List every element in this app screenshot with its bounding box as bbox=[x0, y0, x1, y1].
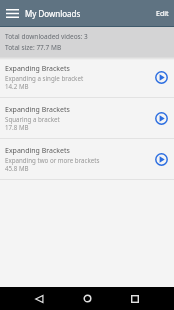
staticText: Total downloaded videos: 3 bbox=[5, 32, 88, 41]
staticText: Squaring a bracket bbox=[5, 115, 60, 123]
staticText: Total size: 77.7 MB bbox=[5, 43, 62, 52]
button[interactable]: Recent apps bbox=[115, 287, 155, 310]
staticText: My Downloads bbox=[25, 8, 81, 19]
button[interactable]: Back bbox=[19, 287, 59, 310]
button[interactable]: Play Expanding Brackets bbox=[150, 107, 172, 129]
staticText: 14.2 MB bbox=[5, 82, 29, 90]
staticText: Edit bbox=[156, 9, 169, 19]
staticText: 45.8 MB bbox=[5, 164, 29, 172]
staticText: 17.8 MB bbox=[5, 123, 29, 131]
staticText: Expanding a single bracket bbox=[5, 74, 84, 82]
staticText: Expanding Brackets bbox=[5, 64, 70, 74]
button[interactable]: Expanding Brackets bbox=[0, 57, 174, 97]
button[interactable]: Expanding Brackets bbox=[0, 98, 174, 138]
staticText: Expanding two or more brackets bbox=[5, 156, 100, 164]
staticText: Expanding Brackets bbox=[5, 105, 70, 115]
button[interactable]: Edit bbox=[150, 0, 174, 27]
button[interactable]: Play Expanding Brackets bbox=[150, 148, 172, 170]
button[interactable]: Home bbox=[67, 287, 107, 310]
button[interactable]: Open navigation drawer bbox=[0, 0, 25, 27]
button[interactable]: Play Expanding Brackets bbox=[150, 66, 172, 88]
button[interactable]: Expanding Brackets bbox=[0, 139, 174, 179]
staticText: Expanding Brackets bbox=[5, 146, 70, 156]
